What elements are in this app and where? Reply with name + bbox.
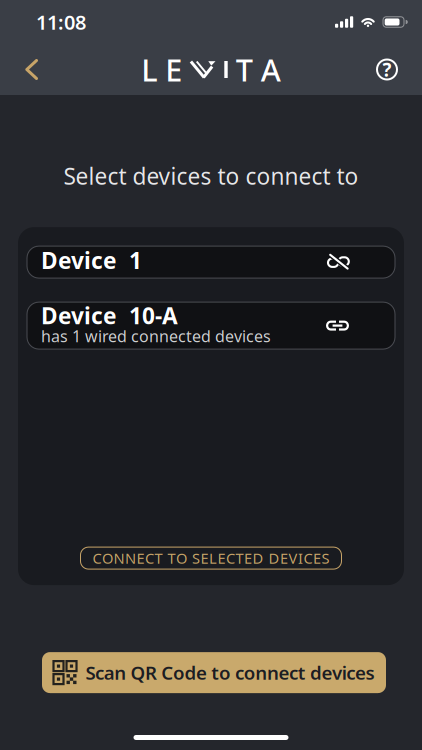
staticText: Select devices to connect to [63,161,358,191]
button[interactable]: Device 10-A [27,302,395,349]
staticText: Device 10-A [41,300,178,330]
staticText: 11:08 [36,9,86,35]
button[interactable]: CONNECT TO SELECTED DEVICES [80,547,341,569]
staticText: CONNECT TO SELECTED DEVICES [92,548,329,568]
staticText: A [261,49,281,90]
button[interactable]: Help [376,44,422,94]
staticText: Scan QR Code to connect devices [85,660,374,685]
staticText: ? [382,57,391,82]
staticText: L [141,49,157,90]
button[interactable]: Scan QR Code to connect devices [36,652,386,693]
button[interactable]: Back [0,45,39,94]
staticText: T [236,49,253,90]
button[interactable]: Device 1 [27,246,395,278]
staticText: E [165,49,182,90]
staticText: has 1 wired connected devices [41,325,271,347]
staticText: Device 1 [41,245,142,275]
